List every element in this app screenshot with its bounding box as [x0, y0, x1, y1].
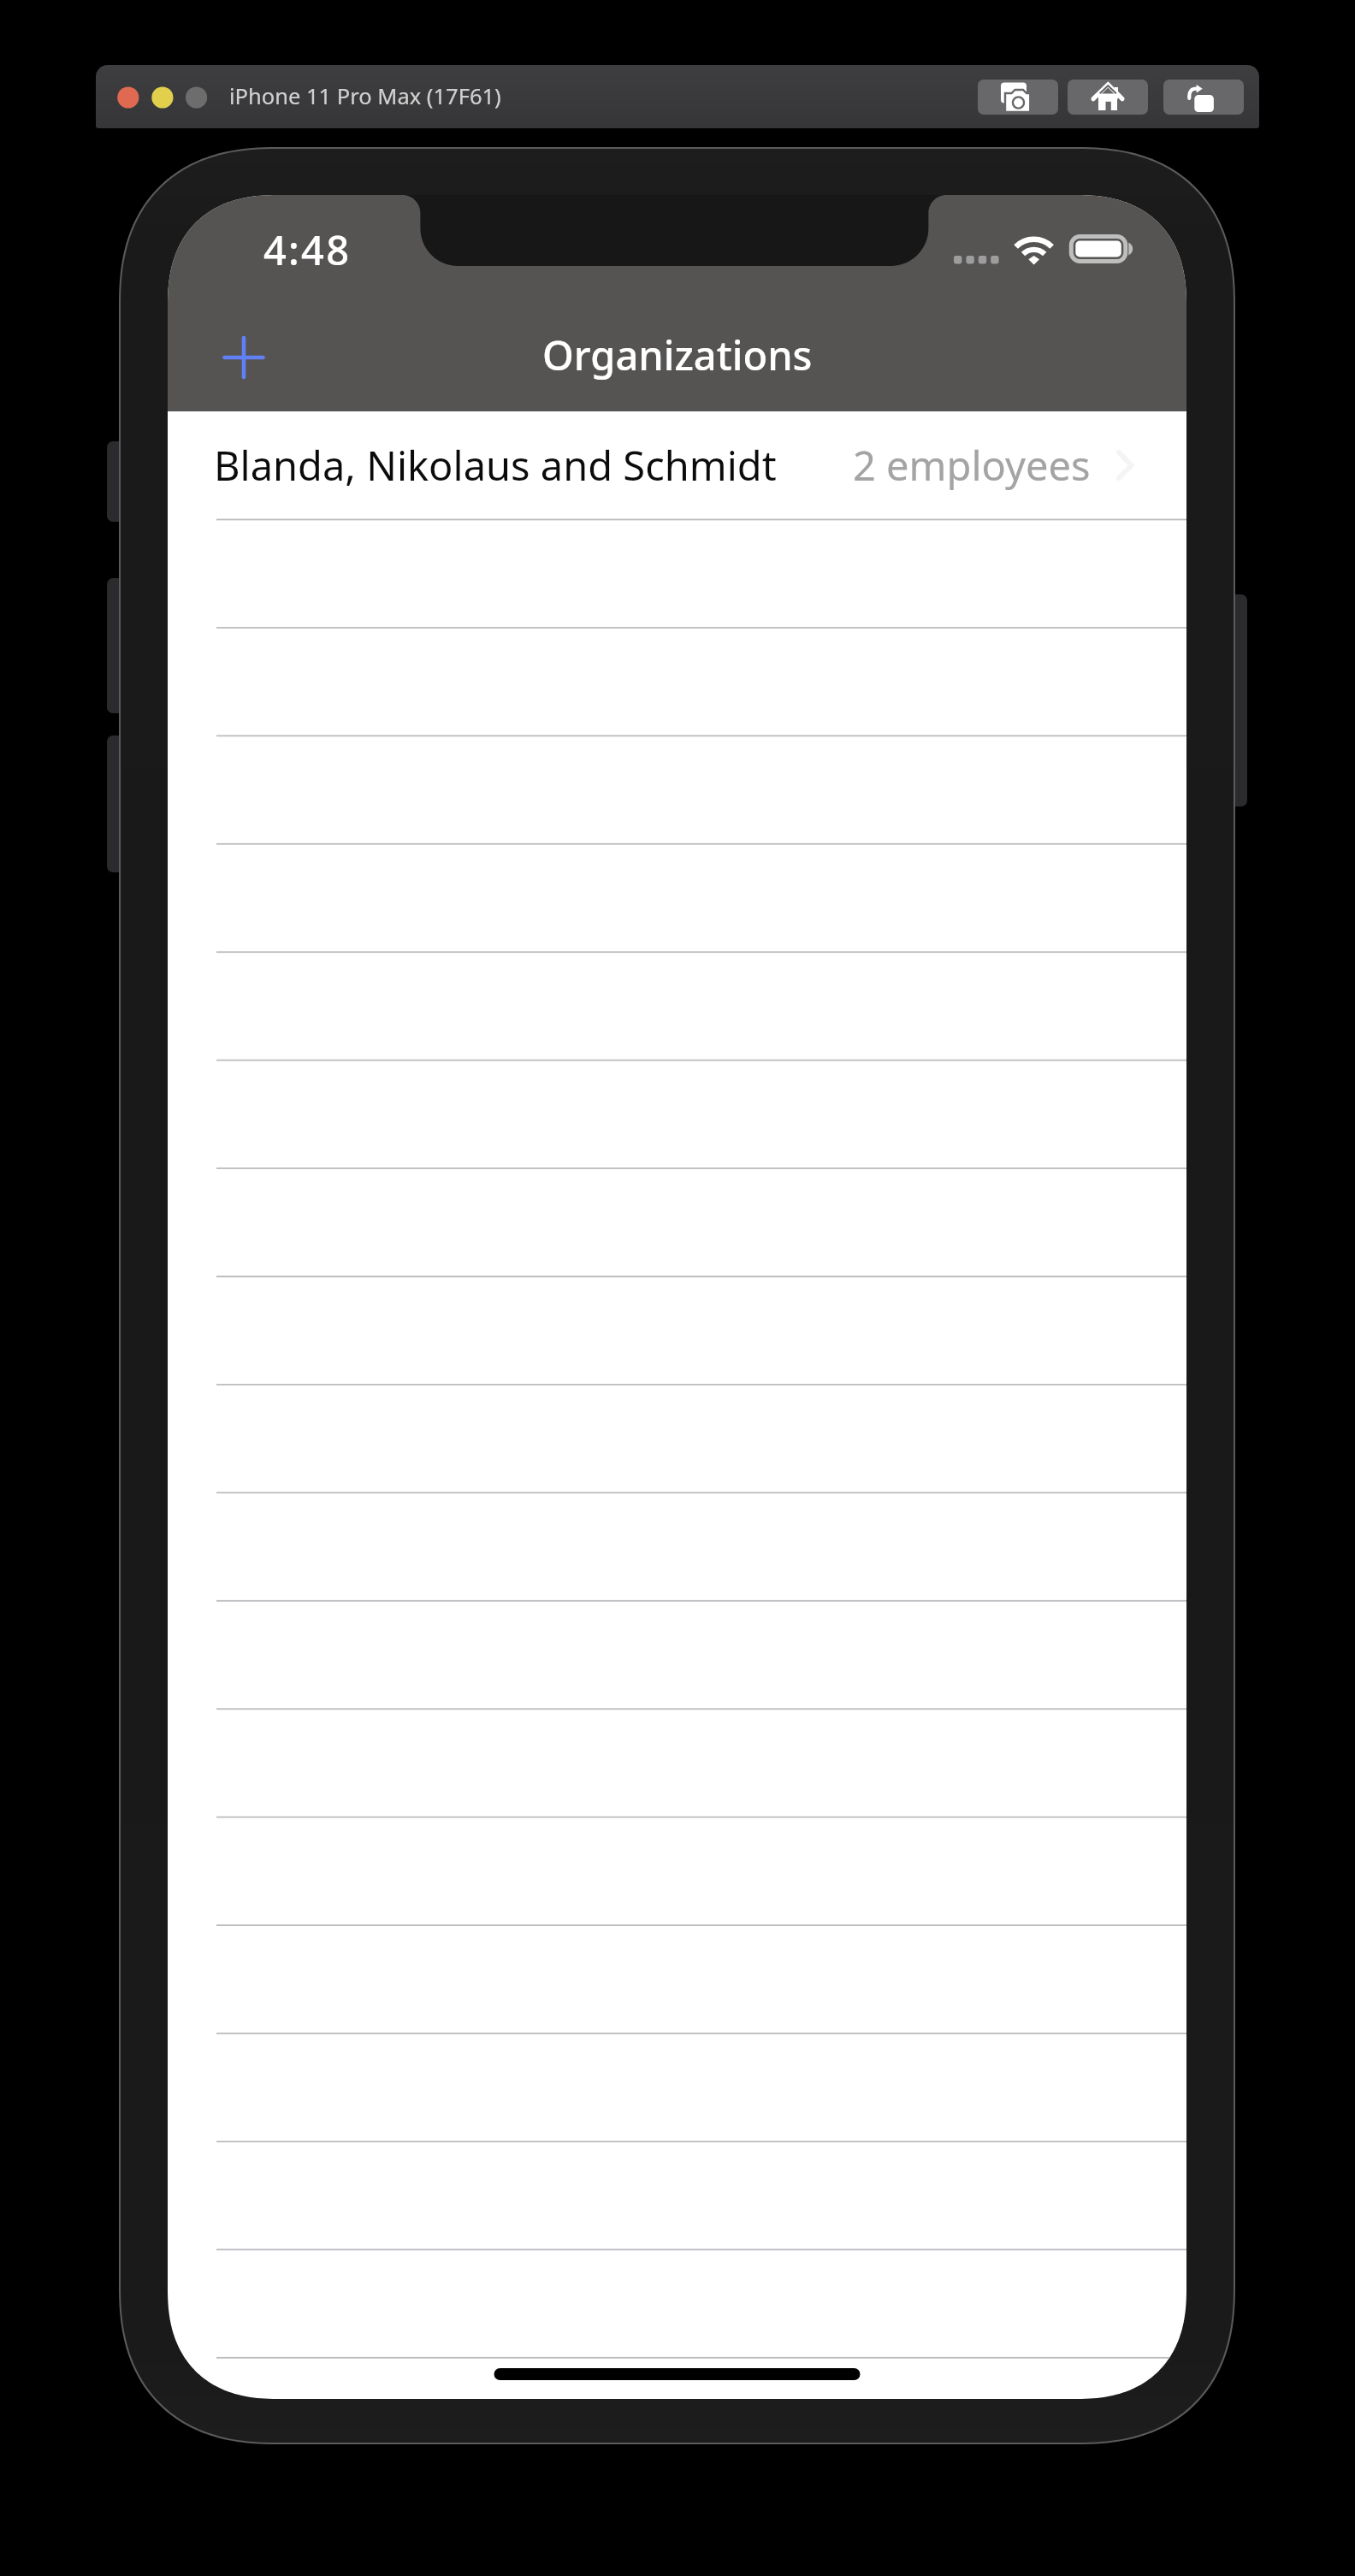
button[interactable]: Share: [1163, 80, 1244, 115]
button[interactable]: Add organization: [197, 310, 291, 405]
button[interactable]: Home: [1068, 80, 1148, 115]
staticText: Organizations: [542, 328, 813, 382]
staticText: 4:48: [263, 222, 352, 277]
button[interactable]: Blanda, Nikolaus and Schmidt: [168, 411, 1186, 519]
staticText: 2 employees: [853, 438, 1091, 493]
staticText: iPhone 11 Pro Max (17F61): [229, 81, 501, 111]
button[interactable]: Screenshot: [978, 80, 1058, 115]
staticText: Blanda, Nikolaus and Schmidt: [214, 438, 777, 493]
